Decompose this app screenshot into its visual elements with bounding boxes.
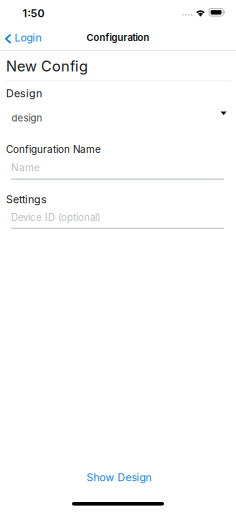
staticText: Device ID (optional)	[11, 211, 101, 223]
staticText: Show Design	[86, 471, 151, 484]
staticText: Settings	[6, 193, 47, 206]
staticText: Configuration Name	[6, 143, 101, 155]
button[interactable]: Show Design	[71, 466, 167, 488]
button[interactable]: design	[6, 108, 230, 125]
staticText: New Config	[6, 57, 88, 75]
staticText: Design	[6, 87, 42, 100]
button[interactable]: Login	[0, 29, 44, 49]
staticText: 1:50	[23, 7, 45, 20]
staticText: Configuration	[86, 32, 149, 43]
staticText: design	[12, 112, 43, 124]
staticText: Login	[15, 31, 42, 44]
staticText: Name	[11, 161, 40, 174]
